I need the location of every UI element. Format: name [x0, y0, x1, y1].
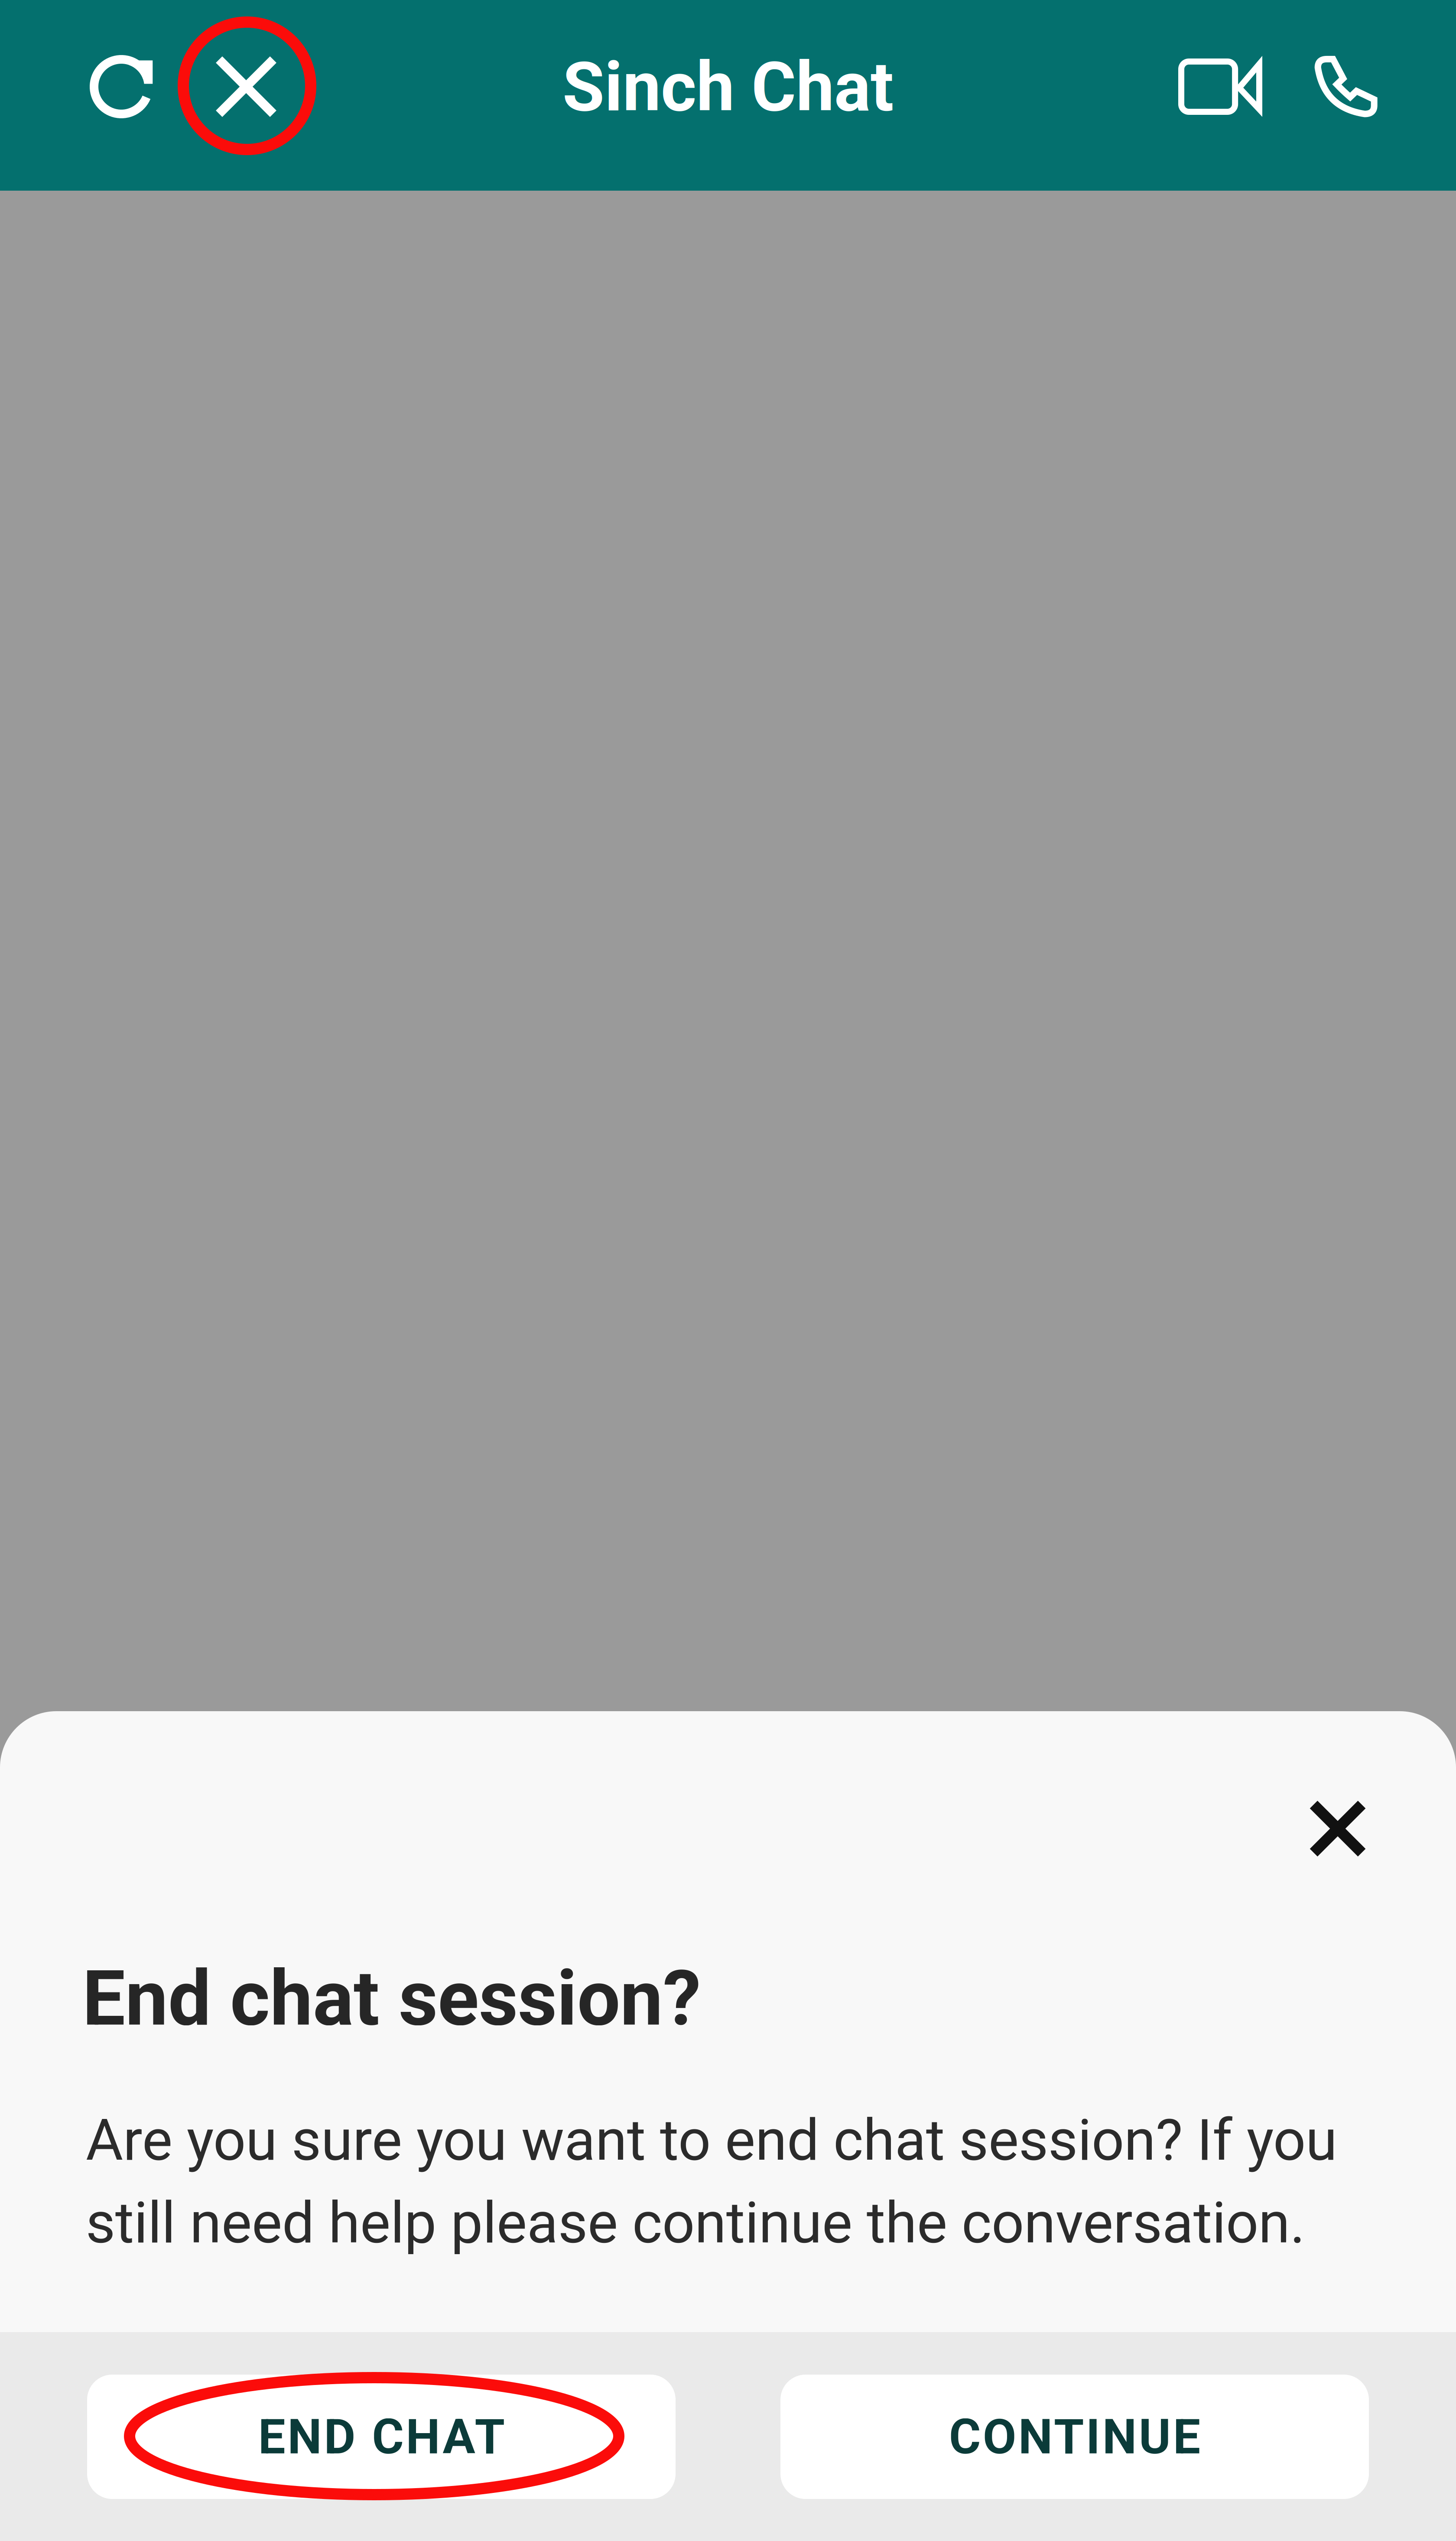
- button[interactable]: Dismiss: [1288, 1779, 1388, 1878]
- button[interactable]: Close chat: [203, 43, 289, 130]
- button[interactable]: CONTINUE: [780, 2375, 1369, 2499]
- staticText: Sinch Chat: [562, 47, 894, 127]
- staticText: CONTINUE: [949, 2408, 1200, 2465]
- staticText: END CHAT: [258, 2408, 505, 2465]
- button[interactable]: END CHAT: [87, 2375, 676, 2499]
- staticText: Are you sure you want to end chat sessio…: [86, 2107, 1337, 2256]
- button[interactable]: Video call: [1173, 43, 1268, 130]
- button[interactable]: Refresh: [78, 43, 165, 130]
- staticText: End chat session?: [82, 1954, 701, 2043]
- button[interactable]: Voice call: [1302, 43, 1388, 130]
